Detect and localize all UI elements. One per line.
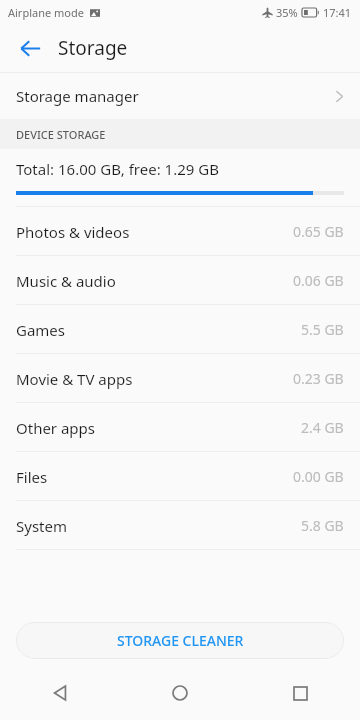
staticText: 0.06 GB — [293, 271, 344, 290]
staticText: Files — [16, 467, 48, 487]
staticText: DEVICE STORAGE — [16, 127, 106, 142]
staticText: Airplane mode — [8, 5, 84, 20]
staticText: 0.65 GB — [293, 222, 344, 241]
staticText: Storage manager — [16, 86, 139, 106]
staticText: Music & audio — [16, 271, 116, 291]
staticText: STORAGE CLEANER — [117, 631, 244, 650]
staticText: Storage — [58, 35, 128, 61]
button[interactable]: Back — [10, 28, 50, 68]
button[interactable]: Recent apps — [272, 673, 328, 713]
button[interactable]: Movie & TV apps — [0, 354, 360, 403]
staticText: 0.23 GB — [293, 369, 344, 388]
button[interactable]: Photos & videos — [0, 207, 360, 256]
staticText: Photos & videos — [16, 222, 130, 242]
button[interactable]: STORAGE CLEANER — [16, 622, 344, 659]
staticText: System — [16, 516, 67, 536]
button[interactable]: Home — [152, 673, 208, 713]
button[interactable]: Back — [32, 673, 88, 713]
staticText: Movie & TV apps — [16, 369, 133, 389]
button[interactable]: Other apps — [0, 403, 360, 452]
staticText: 5.8 GB — [301, 516, 344, 535]
button[interactable]: Files — [0, 452, 360, 501]
button[interactable]: Storage manager — [0, 73, 360, 119]
staticText: Total: 16.00 GB, free: 1.29 GB — [16, 159, 219, 179]
staticText: 35% — [276, 5, 298, 20]
button[interactable]: System — [0, 501, 360, 550]
staticText: Other apps — [16, 418, 96, 438]
button[interactable]: Games — [0, 305, 360, 354]
staticText: 0.00 GB — [293, 467, 344, 486]
staticText: 17:41 — [323, 5, 352, 20]
staticText: Games — [16, 320, 66, 340]
button[interactable]: Music & audio — [0, 256, 360, 305]
staticText: 2.4 GB — [301, 418, 344, 437]
staticText: 5.5 GB — [301, 320, 344, 339]
